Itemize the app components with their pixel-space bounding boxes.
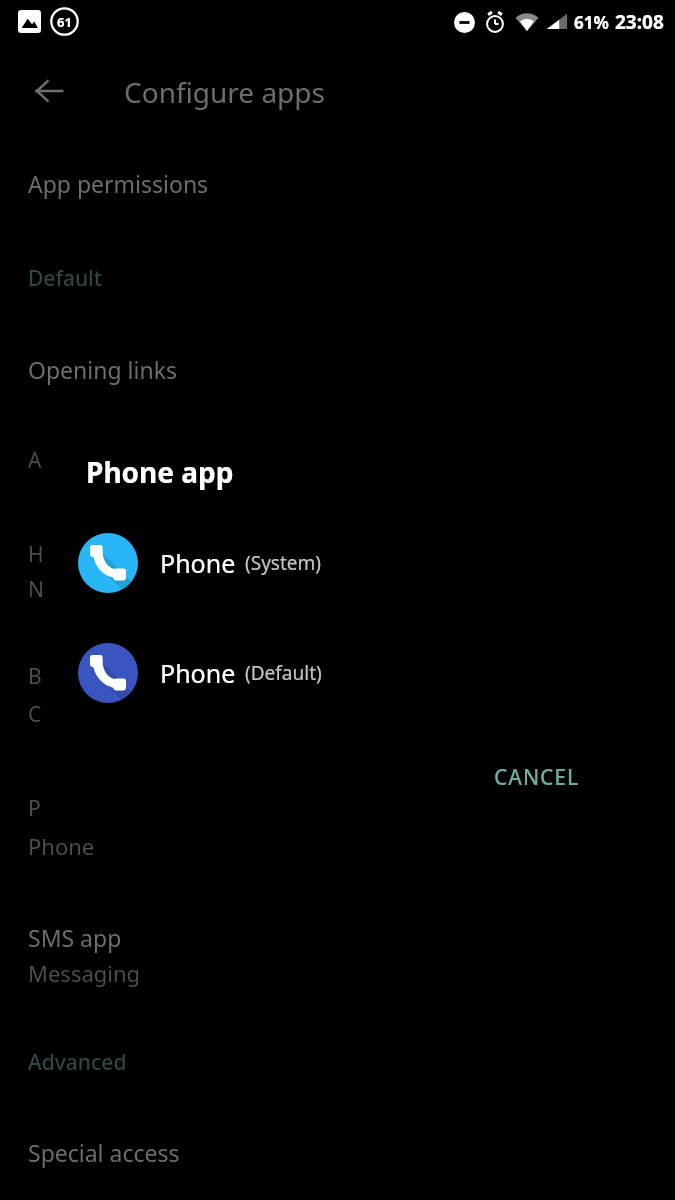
- button[interactable]: App permissions: [0, 166, 675, 200]
- button[interactable]: Opening links: [0, 352, 675, 386]
- staticText: CANCEL: [494, 763, 580, 792]
- staticText: P: [28, 794, 41, 823]
- button[interactable]: Special access: [0, 1135, 675, 1169]
- staticText: 61: [57, 13, 72, 31]
- staticText: (System): [245, 550, 321, 576]
- staticText: C: [28, 700, 42, 729]
- button[interactable]: Phone: [0, 633, 675, 713]
- button[interactable]: Messaging: [0, 956, 675, 990]
- staticText: Special access: [28, 1137, 180, 1168]
- button[interactable]: Phone: [0, 829, 675, 863]
- button[interactable]: CANCEL: [480, 753, 594, 801]
- staticText: 61%: [574, 11, 609, 34]
- button[interactable]: Default: [0, 261, 675, 295]
- staticText: Opening links: [28, 354, 177, 385]
- staticText: SMS app: [28, 922, 122, 953]
- staticText: Phone: [160, 546, 236, 580]
- staticText: (Default): [245, 660, 322, 686]
- button[interactable]: Phone: [0, 523, 675, 603]
- staticText: A: [28, 446, 42, 475]
- staticText: Phone: [28, 831, 95, 861]
- staticText: Advanced: [28, 1048, 127, 1077]
- button[interactable]: Back: [25, 67, 73, 115]
- staticText: N: [28, 575, 44, 604]
- staticText: Messaging: [28, 958, 141, 988]
- staticText: Default: [28, 264, 102, 293]
- staticText: B: [28, 662, 42, 691]
- staticText: H: [28, 540, 44, 569]
- button[interactable]: SMS app: [0, 920, 675, 954]
- staticText: Phone app: [86, 453, 234, 491]
- staticText: Configure apps: [124, 73, 325, 111]
- staticText: 23:08: [615, 9, 664, 35]
- staticText: Phone: [160, 656, 236, 690]
- staticText: App permissions: [28, 168, 209, 199]
- button[interactable]: Advanced: [0, 1045, 675, 1079]
